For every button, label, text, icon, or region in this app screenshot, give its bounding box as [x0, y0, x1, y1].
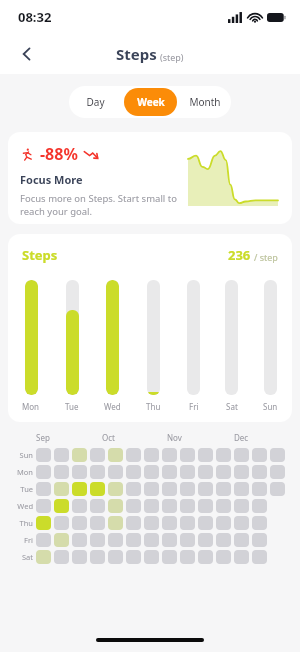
- button[interactable]: Week: [124, 88, 177, 116]
- staticText: 08:32: [18, 8, 52, 26]
- staticText: Sun: [19, 450, 33, 460]
- button[interactable]: -88%: [8, 132, 292, 224]
- staticText: Mon: [22, 401, 40, 410]
- staticText: Steps: [22, 246, 58, 264]
- staticText: Nov: [167, 432, 182, 443]
- staticText: / step: [254, 251, 278, 263]
- staticText: Tue: [65, 401, 79, 410]
- staticText: Month: [189, 95, 221, 109]
- button[interactable]: Back: [10, 37, 44, 71]
- staticText: Fri: [189, 401, 199, 410]
- staticText: (step): [160, 51, 184, 63]
- staticText: 236: [228, 246, 251, 264]
- staticText: Focus more on Steps. Start small to reac…: [20, 192, 177, 218]
- staticText: Focus More: [20, 172, 83, 187]
- staticText: Sat: [226, 401, 238, 410]
- staticText: -88%: [40, 143, 78, 165]
- staticText: Thu: [19, 518, 33, 528]
- staticText: Oct: [102, 432, 115, 443]
- staticText: Wed: [104, 401, 121, 410]
- staticText: Wed: [17, 501, 33, 511]
- staticText: Day: [86, 95, 105, 109]
- staticText: Dec: [234, 432, 249, 443]
- staticText: Week: [137, 95, 165, 109]
- staticText: Tue: [20, 484, 33, 494]
- staticText: Steps: [116, 44, 157, 64]
- staticText: Sat: [21, 552, 33, 562]
- staticText: Sep: [36, 432, 50, 443]
- button[interactable]: Day: [71, 88, 120, 116]
- button[interactable]: Steps: [8, 234, 292, 422]
- staticText: Mon: [17, 467, 33, 477]
- staticText: Fri: [24, 535, 33, 545]
- button[interactable]: Month: [181, 88, 229, 116]
- staticText: Thu: [146, 401, 161, 410]
- staticText: Sun: [263, 401, 278, 410]
